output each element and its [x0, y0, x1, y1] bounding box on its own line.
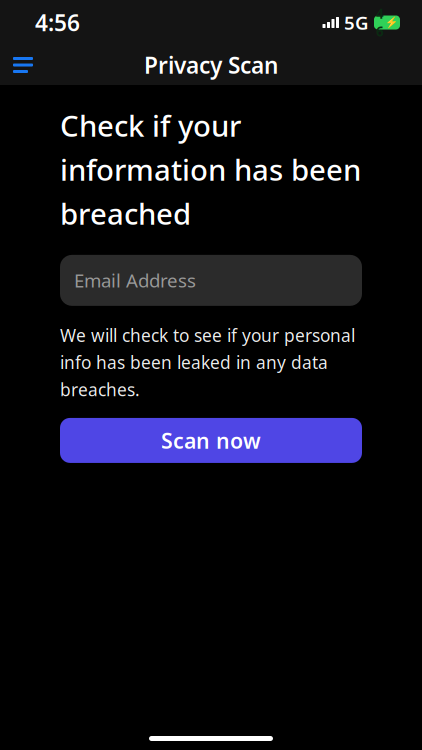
staticText: Check if your information has been breac… [60, 106, 361, 233]
staticText: Email Address [74, 268, 196, 293]
button[interactable]: Scan now [60, 418, 362, 463]
staticText: 46 [376, 5, 384, 40]
staticText: Privacy Scan [144, 50, 278, 80]
button[interactable]: Email Address [60, 255, 362, 306]
staticText: 4:56 [35, 7, 80, 37]
staticText: ⚡ [385, 16, 398, 29]
staticText: Scan now [161, 426, 261, 454]
button[interactable]: Menu [1, 45, 45, 85]
staticText: We will check to see if your personal in… [60, 324, 355, 401]
staticText: 5G [344, 10, 369, 35]
